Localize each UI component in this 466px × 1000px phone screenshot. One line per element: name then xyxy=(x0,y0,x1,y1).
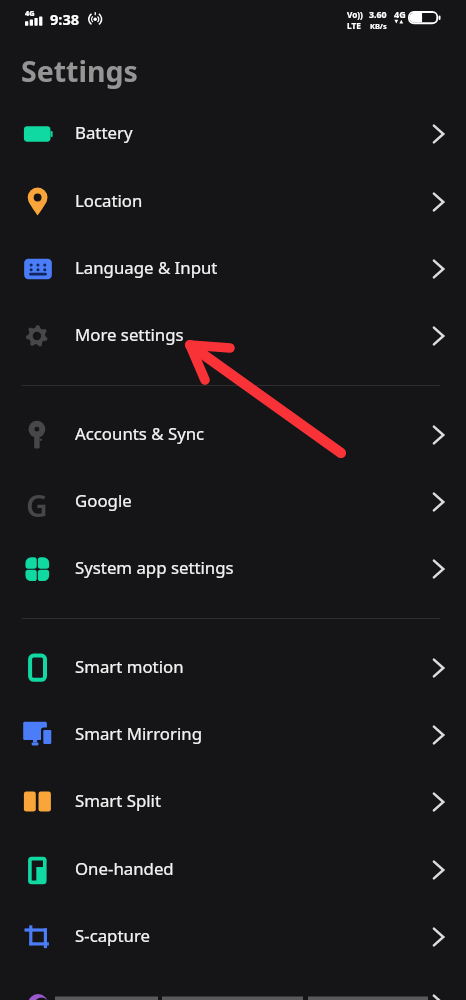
other: Smart Mirroring xyxy=(428,724,448,746)
other: Long Shot xyxy=(428,993,448,1000)
staticText: System app settings xyxy=(75,556,234,579)
button[interactable]: G xyxy=(0,468,466,535)
button[interactable]: Accounts & Sync xyxy=(0,401,466,468)
other: Smart motion xyxy=(428,657,448,679)
staticText: Accounts & Sync xyxy=(75,422,205,445)
other: Location xyxy=(428,191,448,213)
staticText: Battery xyxy=(75,121,133,144)
other: Google xyxy=(428,491,448,513)
staticText: Vo)) xyxy=(347,9,363,20)
button[interactable]: Language & Input xyxy=(0,235,466,302)
staticText: S-capture xyxy=(75,924,150,947)
other: Accounts & Sync xyxy=(428,424,448,446)
button[interactable]: Smart Split xyxy=(0,768,466,835)
staticText: Language & Input xyxy=(75,256,218,279)
button[interactable]: Location xyxy=(0,168,466,235)
button[interactable]: Long Shot xyxy=(0,970,466,1000)
staticText: 4G xyxy=(25,8,35,18)
staticText: G xyxy=(26,485,48,517)
staticText: 9:38 xyxy=(50,9,80,29)
button[interactable]: More settings xyxy=(0,302,466,369)
button[interactable]: One-handed xyxy=(0,836,466,903)
staticText: Settings xyxy=(21,52,138,91)
staticText: 3.60 xyxy=(369,9,387,21)
staticText: Google xyxy=(75,489,132,512)
button[interactable]: S-capture xyxy=(0,903,466,970)
staticText: Location xyxy=(75,189,143,212)
button[interactable]: Smart Mirroring xyxy=(0,701,466,768)
other: Battery xyxy=(428,123,448,145)
staticText: Smart Mirroring xyxy=(75,722,202,745)
staticText: One-handed xyxy=(75,857,174,880)
button[interactable]: Battery xyxy=(0,100,466,167)
staticText: More settings xyxy=(75,323,184,346)
other: More settings xyxy=(428,325,448,347)
staticText: Smart motion xyxy=(75,655,184,678)
other: System app settings xyxy=(428,558,448,580)
staticText: Long Shot xyxy=(75,991,155,1000)
staticText: Smart Split xyxy=(75,789,161,812)
staticText: 4G xyxy=(394,8,406,20)
other: Language & Input xyxy=(428,258,448,280)
other: S-capture xyxy=(428,926,448,948)
other: Smart Split xyxy=(428,791,448,813)
button[interactable]: System app settings xyxy=(0,535,466,602)
other: One-handed xyxy=(428,859,448,881)
button[interactable]: Smart motion xyxy=(0,634,466,701)
staticText: LTE xyxy=(347,20,361,31)
staticText: KB/s xyxy=(370,21,387,31)
